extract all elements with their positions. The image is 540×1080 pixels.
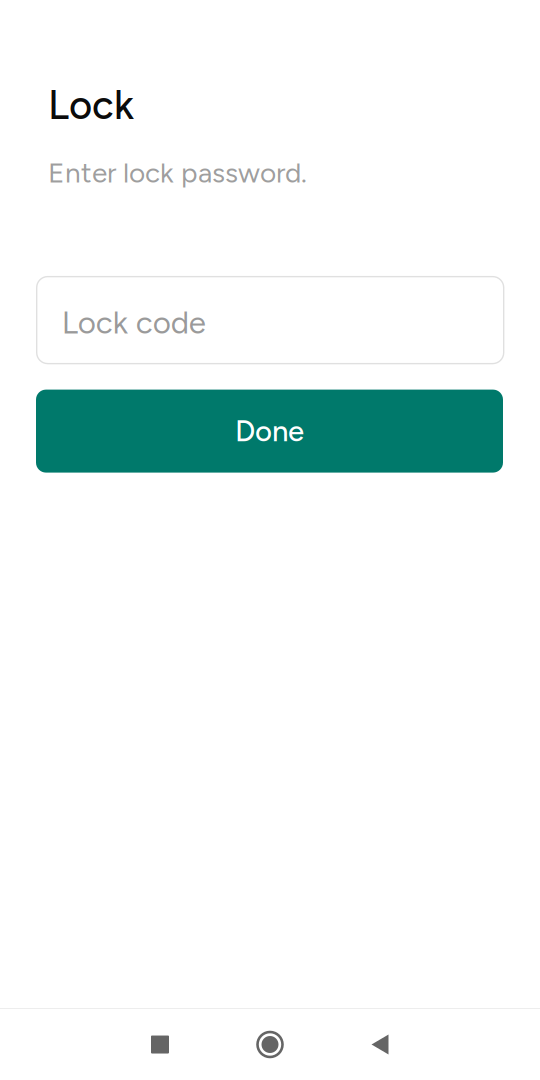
button[interactable]: Lock code	[37, 277, 504, 364]
button[interactable]: Home	[215, 1014, 325, 1074]
staticText: Lock	[48, 81, 134, 129]
button[interactable]: Back	[325, 1014, 435, 1074]
staticText: Done	[235, 413, 304, 449]
staticText: Enter lock password.	[48, 156, 307, 190]
button[interactable]: Done	[36, 390, 503, 473]
staticText: Lock code	[62, 304, 206, 341]
button[interactable]: Recent apps	[105, 1014, 215, 1074]
